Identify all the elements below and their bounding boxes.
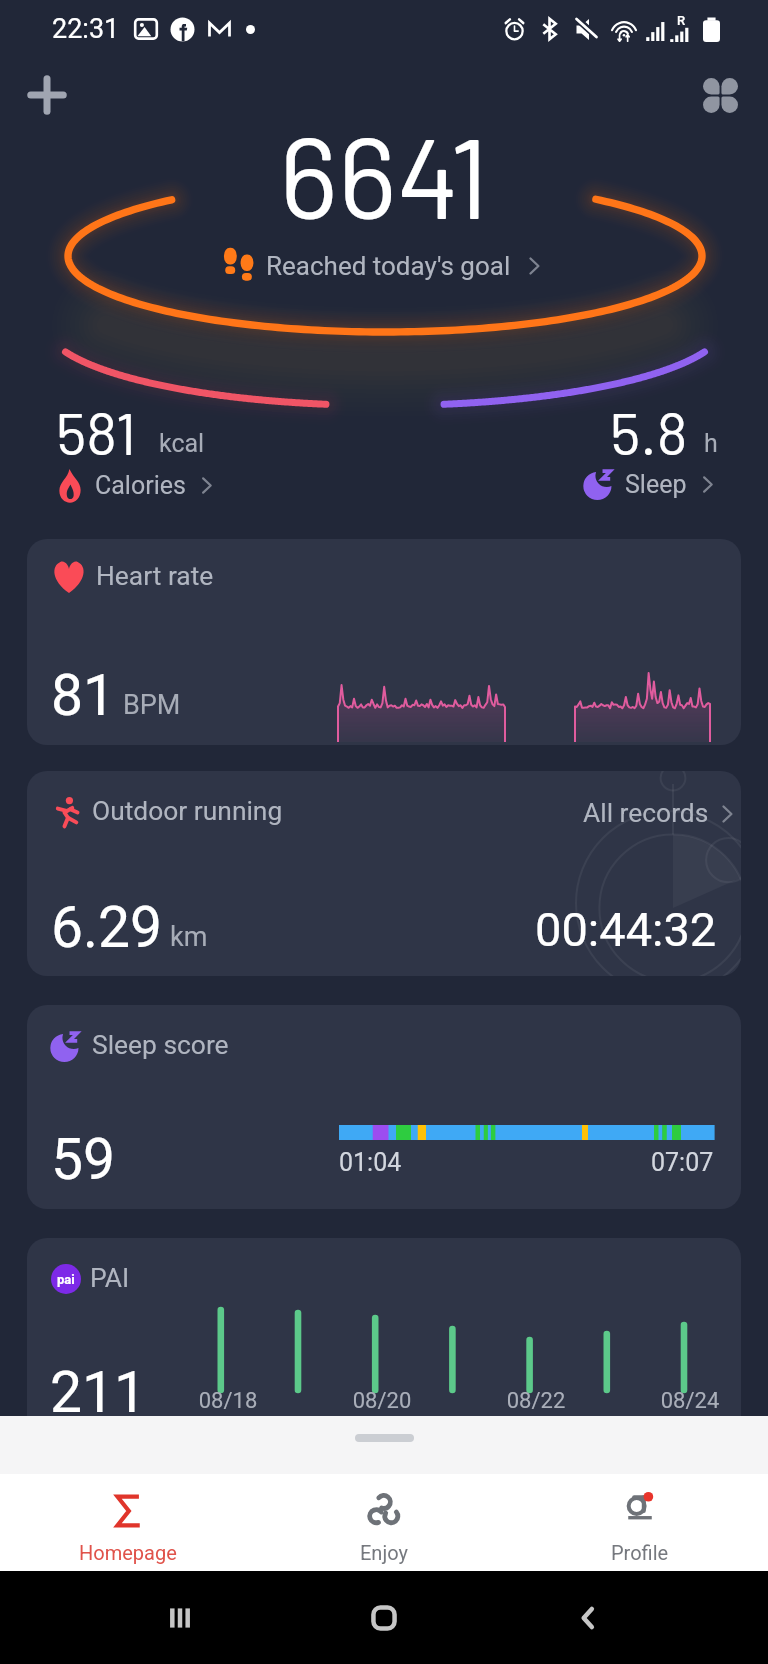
staticText: km: [170, 921, 208, 953]
button[interactable]: Home: [360, 1594, 408, 1642]
button[interactable]: Homepage: [0, 1478, 256, 1575]
staticText: Calories: [95, 471, 186, 500]
staticText: Reached today's goal: [266, 251, 511, 281]
button[interactable]: Calories: [56, 468, 217, 503]
staticText: Outdoor running: [92, 796, 283, 827]
button[interactable]: Sleep: [583, 468, 718, 500]
button[interactable]: Heart rate: [27, 539, 741, 745]
staticText: 08/22: [480, 1388, 592, 1414]
staticText: 81: [51, 662, 116, 729]
staticText: 6641: [0, 105, 768, 242]
button[interactable]: pai: [27, 1238, 741, 1442]
button[interactable]: Back: [564, 1594, 612, 1642]
button[interactable]: Reached today's goal: [0, 247, 768, 284]
button[interactable]: Devices: [703, 78, 738, 113]
staticText: h: [704, 429, 718, 458]
button[interactable]: Sleep score: [27, 1005, 741, 1209]
staticText: 581: [56, 396, 137, 467]
staticText: pai: [57, 1272, 75, 1287]
staticText: Profile: [611, 1541, 669, 1564]
staticText: 211: [50, 1359, 147, 1426]
button[interactable]: Add: [22, 70, 72, 120]
staticText: Sleep score: [92, 1030, 229, 1061]
staticText: BPM: [123, 689, 181, 721]
staticText: 59: [51, 1126, 116, 1193]
staticText: 08/18: [172, 1388, 284, 1414]
staticText: R: [677, 13, 686, 28]
staticText: 07:07: [651, 1148, 714, 1177]
staticText: PAI: [90, 1263, 130, 1294]
staticText: 6.29: [51, 894, 163, 961]
staticText: Enjoy: [360, 1541, 408, 1564]
staticText: 01:04: [339, 1148, 402, 1177]
staticText: 22:31: [52, 13, 120, 45]
staticText: 08/24: [634, 1388, 741, 1414]
staticText: Heart rate: [96, 561, 214, 592]
staticText: Sleep: [625, 470, 687, 499]
button[interactable]: Enjoy: [256, 1478, 512, 1575]
staticText: 08/20: [326, 1388, 438, 1414]
staticText: 00:44:32: [535, 902, 717, 957]
staticText: All records: [583, 798, 709, 829]
staticText: Homepage: [79, 1541, 177, 1564]
button[interactable]: Profile: [512, 1478, 768, 1575]
button[interactable]: Outdoor running: [27, 771, 741, 976]
staticText: kcal: [159, 429, 205, 458]
staticText: 5.8: [610, 396, 688, 467]
button[interactable]: Recent apps: [156, 1594, 204, 1642]
